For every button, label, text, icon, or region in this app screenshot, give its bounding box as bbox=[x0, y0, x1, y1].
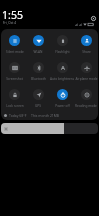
staticText: Bluetooth bbox=[31, 77, 46, 81]
button[interactable]: GPS bbox=[26, 83, 50, 110]
button[interactable]: Silent mode bbox=[3, 29, 26, 56]
button[interactable]: Screenshot bbox=[3, 56, 26, 83]
button[interactable]: Brightness bbox=[1, 123, 98, 134]
staticText: Flashlight bbox=[55, 50, 70, 54]
button[interactable]: Auto brightness bbox=[50, 56, 74, 83]
staticText: Today 68°F bbox=[9, 113, 27, 118]
staticText: Lock screen bbox=[6, 104, 24, 108]
staticText: Power off bbox=[55, 104, 70, 108]
staticText: Share bbox=[82, 50, 91, 54]
staticText: GPS bbox=[35, 104, 41, 108]
staticText: Fri, Oct 4 bbox=[3, 21, 16, 25]
staticText: Reading mode bbox=[75, 104, 97, 108]
button[interactable]: Share bbox=[74, 29, 98, 56]
staticText: WLAN bbox=[33, 50, 43, 54]
staticText: This month 21MB bbox=[31, 113, 60, 118]
button[interactable]: WLAN bbox=[26, 29, 50, 56]
staticText: Screenshot bbox=[6, 77, 23, 81]
button[interactable]: Lock screen bbox=[3, 83, 26, 110]
button[interactable]: Airplane mode bbox=[74, 56, 98, 83]
button[interactable]: Reading mode bbox=[74, 83, 98, 110]
staticText: Airplane mode bbox=[75, 77, 98, 81]
staticText: Auto brightness bbox=[50, 77, 74, 81]
button[interactable]: Settings bbox=[91, 16, 96, 21]
staticText: 1:55 bbox=[2, 8, 24, 22]
button[interactable]: Bluetooth bbox=[26, 56, 50, 83]
staticText: Silent mode bbox=[6, 50, 24, 54]
button[interactable]: Power off bbox=[50, 83, 74, 110]
button[interactable]: Flashlight bbox=[50, 29, 74, 56]
